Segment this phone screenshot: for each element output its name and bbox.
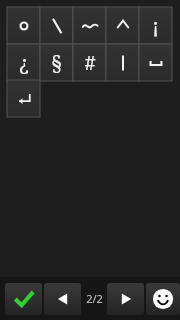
- button[interactable]: [73, 7, 106, 44]
- button[interactable]: [106, 44, 139, 81]
- button[interactable]: ¡: [139, 7, 172, 44]
- button[interactable]: [139, 44, 172, 81]
- button[interactable]: Emoji: [146, 283, 180, 315]
- button[interactable]: [7, 80, 40, 117]
- staticText: #: [84, 49, 96, 76]
- button[interactable]: Next page: [107, 283, 144, 315]
- button[interactable]: #: [73, 44, 106, 81]
- button[interactable]: [106, 7, 139, 44]
- button[interactable]: §: [40, 44, 73, 81]
- staticText: ¡: [152, 12, 159, 39]
- button[interactable]: [7, 7, 40, 44]
- button[interactable]: Accept: [5, 283, 42, 315]
- staticText: §: [51, 49, 62, 76]
- staticText: ¿: [19, 49, 29, 76]
- button[interactable]: Previous page: [44, 283, 81, 315]
- button[interactable]: ¿: [7, 44, 40, 81]
- button[interactable]: [40, 7, 73, 44]
- staticText: 2/2: [86, 291, 103, 306]
